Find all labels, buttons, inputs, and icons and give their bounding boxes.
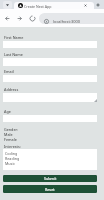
staticText: Interests: [4, 144, 21, 149]
staticText: Email [4, 69, 14, 74]
button[interactable]: Search tabs [3, 1, 12, 9]
staticText: localhost:3000 [53, 19, 81, 24]
staticText: Gender: [4, 127, 19, 132]
staticText: Address [4, 87, 19, 92]
button[interactable]: Reset [3, 185, 97, 193]
button[interactable]: Reload [28, 14, 37, 23]
button[interactable]: Coding [3, 149, 97, 170]
button[interactable]: Male [4, 132, 13, 137]
staticText: Reading [5, 156, 20, 161]
staticText: Age [4, 109, 11, 114]
button[interactable]: localhost:3000 [39, 13, 104, 24]
button[interactable]: Close tab [84, 4, 87, 7]
staticText: Create Next App [24, 4, 52, 9]
button[interactable]: Create Next App [14, 2, 94, 9]
button[interactable]: Submit [3, 175, 97, 182]
staticText: Submit [44, 176, 57, 181]
button[interactable]: Back [3, 14, 12, 23]
staticText: Coding [5, 151, 18, 156]
staticText: Last Name [4, 52, 23, 57]
button[interactable]: Female [4, 137, 17, 142]
button[interactable]: Forward [15, 14, 24, 23]
staticText: Music [5, 161, 16, 166]
button[interactable]: New tab [96, 3, 100, 7]
staticText: First Name [4, 35, 24, 40]
staticText: Reset [45, 187, 55, 192]
button[interactable] [3, 93, 97, 102]
